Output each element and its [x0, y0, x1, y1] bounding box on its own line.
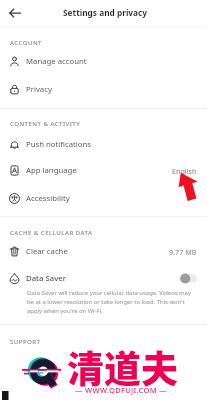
staticText: Data Saver	[26, 273, 67, 284]
staticText: Privacy	[26, 84, 52, 95]
button[interactable]: Manage account	[0, 48, 207, 75]
staticText: English	[172, 166, 197, 176]
staticText: — WWW.QDFUJI.COM —	[75, 385, 168, 395]
button[interactable]: Clear cache	[0, 238, 207, 265]
button[interactable]: Back	[4, 2, 26, 24]
staticText: Manage account	[26, 56, 87, 67]
staticText: Data Saver will reduce your cellular dat…	[27, 289, 197, 315]
staticText: Accessibility	[26, 193, 70, 204]
button[interactable]: Push notifications	[0, 131, 207, 158]
staticText: 9.77 MB	[169, 247, 197, 257]
staticText: CACHE & CELLULAR DATA	[10, 228, 93, 236]
staticText: CONTENT & ACTIVITY	[10, 119, 81, 127]
staticText: Clear cache	[26, 246, 68, 257]
staticText: Settings and privacy	[63, 7, 148, 18]
button[interactable]: Data Saver	[0, 265, 207, 309]
button[interactable]: App language	[0, 157, 207, 184]
staticText: SUPPORT	[10, 337, 41, 345]
staticText: 清道夫	[67, 340, 178, 394]
staticText: App language	[26, 165, 77, 176]
staticText: ACCOUNT	[10, 38, 42, 46]
staticText: Push notifications	[26, 139, 91, 150]
button[interactable]: Privacy	[0, 76, 207, 103]
button[interactable]: Accessibility	[0, 185, 207, 212]
